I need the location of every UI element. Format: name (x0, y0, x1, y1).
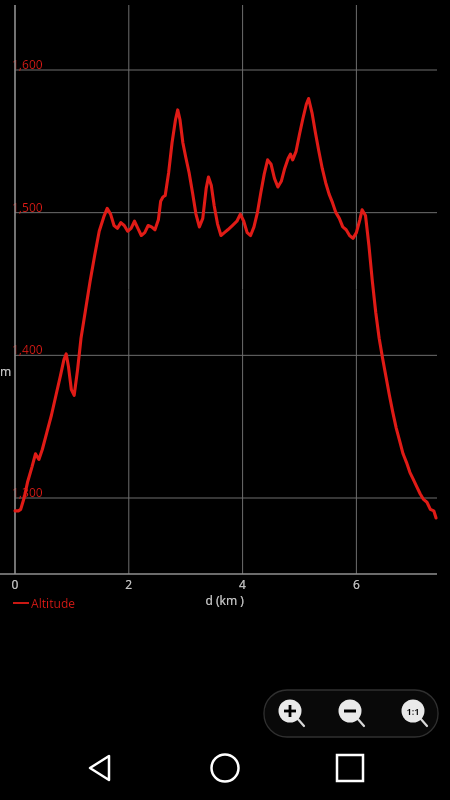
button[interactable]: Recent apps (320, 743, 380, 793)
button[interactable]: Zoom in (276, 698, 308, 730)
button[interactable]: Home (195, 743, 255, 793)
button[interactable]: Zoom out (336, 698, 368, 730)
button[interactable]: Actual size (399, 698, 431, 730)
button[interactable]: Back (70, 743, 130, 793)
